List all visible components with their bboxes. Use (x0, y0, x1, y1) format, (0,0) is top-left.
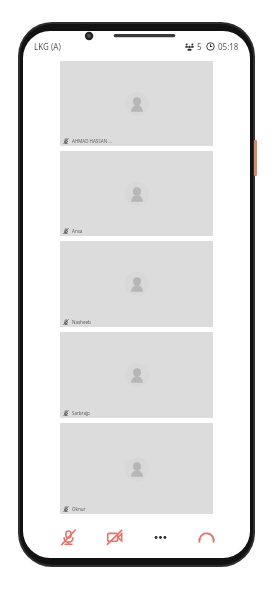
button[interactable]: End call (191, 523, 221, 551)
button[interactable]: More options (145, 523, 175, 551)
staticText: AHMAD HASSAN ... (72, 138, 112, 144)
button[interactable]: Oknur (60, 423, 213, 514)
staticText: Nasheeb (72, 319, 91, 325)
button[interactable]: Turn on camera (99, 523, 129, 551)
staticText: Ansa (72, 228, 83, 234)
other: Participants (185, 42, 194, 51)
staticText: Sarbrajp (72, 410, 90, 416)
button[interactable]: Unmute microphone (53, 523, 83, 551)
other: Call duration (206, 42, 215, 51)
staticText: LKG (A) (34, 41, 61, 52)
button[interactable]: Sarbrajp (60, 332, 213, 418)
staticText: 5 (197, 41, 202, 52)
staticText: 05:18 (218, 41, 239, 52)
button[interactable]: AHMAD HASSAN ... (60, 61, 213, 146)
button[interactable]: Nasheeb (60, 241, 213, 327)
button[interactable]: Ansa (60, 151, 213, 236)
staticText: Oknur (72, 506, 86, 512)
